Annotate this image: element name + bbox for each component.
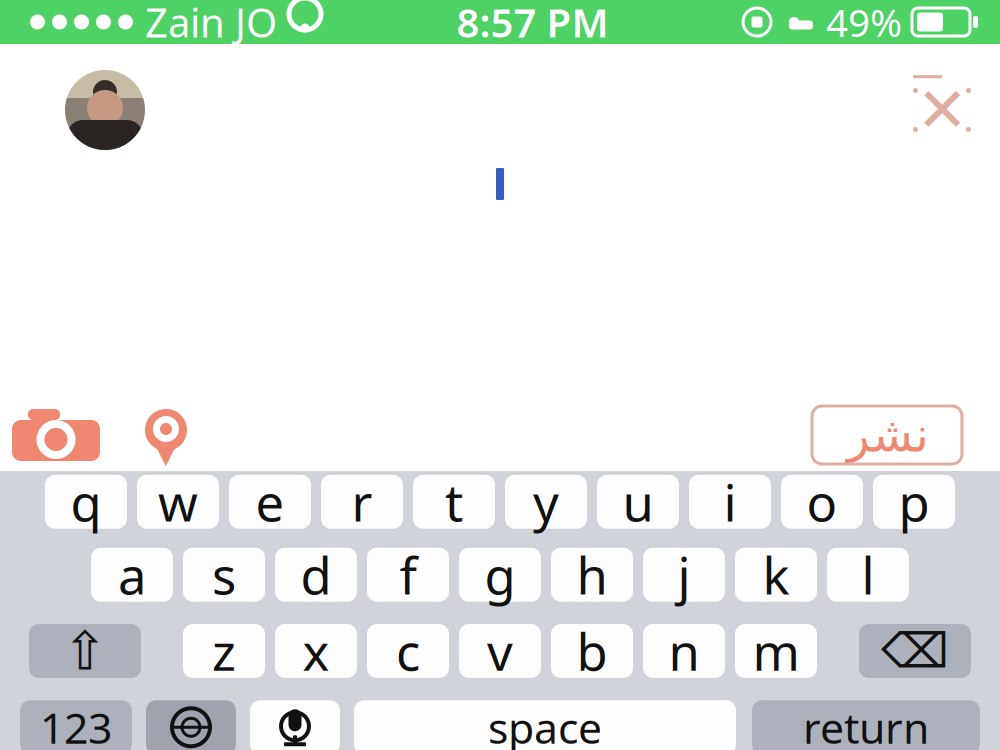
button[interactable]: Profile photo [35, 70, 175, 150]
staticText: l [861, 541, 874, 608]
staticText: return [803, 699, 929, 750]
button[interactable]: space [354, 700, 736, 750]
button[interactable]: x [275, 624, 357, 678]
staticText: f [399, 541, 416, 608]
staticText: y [533, 468, 559, 535]
button[interactable]: j [643, 548, 725, 602]
staticText: w [158, 468, 198, 535]
staticText: d [300, 541, 331, 608]
button[interactable]: e [229, 475, 311, 529]
staticText: h [576, 541, 607, 608]
staticText: b [576, 617, 607, 685]
staticText: v [487, 617, 513, 685]
button[interactable]: return [752, 700, 980, 750]
button[interactable]: r [321, 475, 403, 529]
button[interactable]: y [505, 475, 587, 529]
button[interactable]: w [137, 475, 219, 529]
button[interactable]: Close [894, 64, 990, 156]
button[interactable]: 123 [20, 700, 132, 750]
staticText: ▼ [152, 430, 179, 470]
button[interactable]: Dictate [250, 700, 340, 750]
button[interactable]: n [643, 624, 725, 678]
staticText: r [351, 468, 372, 535]
staticText: p [898, 468, 929, 535]
staticText: q [70, 468, 101, 535]
button[interactable]: Next keyboard [146, 700, 236, 750]
button[interactable]: g [459, 548, 541, 602]
staticText: g [484, 541, 515, 608]
button[interactable]: s [183, 548, 265, 602]
button[interactable]: Camera [0, 399, 112, 471]
staticText: j [677, 541, 690, 608]
staticText: 123 [40, 699, 112, 750]
button[interactable]: t [413, 475, 495, 529]
button[interactable]: v [459, 624, 541, 678]
staticText: k [762, 541, 789, 608]
button[interactable]: Location [112, 399, 220, 471]
button[interactable]: Delete [859, 624, 971, 678]
button[interactable]: a [91, 548, 173, 602]
staticText: u [622, 468, 653, 535]
button[interactable]: f [367, 548, 449, 602]
staticText: ⌫ [881, 624, 949, 678]
staticText: t [445, 468, 463, 535]
button[interactable]: p [873, 475, 955, 529]
staticText: z [212, 617, 236, 685]
staticText: نشر [846, 408, 928, 462]
button[interactable]: c [367, 624, 449, 678]
staticText: ⇧ [62, 621, 107, 681]
staticText: Zain JO [145, 0, 277, 48]
button[interactable]: k [735, 548, 817, 602]
staticText: i [723, 468, 736, 535]
button[interactable]: q [45, 475, 127, 529]
button[interactable]: o [781, 475, 863, 529]
button[interactable]: m [735, 624, 817, 678]
button[interactable]: Shift [29, 621, 141, 681]
button[interactable]: d [275, 548, 357, 602]
staticText: m [752, 617, 799, 685]
staticText: e [255, 468, 284, 535]
staticText: a [118, 541, 146, 608]
button[interactable]: b [551, 624, 633, 678]
staticText: n [668, 617, 699, 685]
staticText: 49% [826, 0, 902, 48]
staticText: space [488, 699, 602, 750]
staticText: c [396, 617, 420, 685]
staticText: 8:57 PM [456, 0, 608, 48]
staticText: o [806, 468, 837, 535]
staticText: s [212, 541, 236, 608]
button[interactable]: i [689, 475, 771, 529]
staticText: x [302, 617, 329, 685]
button[interactable]: z [183, 624, 265, 678]
staticText: ✕ [916, 75, 967, 145]
button[interactable]: l [827, 548, 909, 602]
button[interactable]: u [597, 475, 679, 529]
button[interactable]: نشر [812, 406, 962, 464]
button[interactable]: h [551, 548, 633, 602]
